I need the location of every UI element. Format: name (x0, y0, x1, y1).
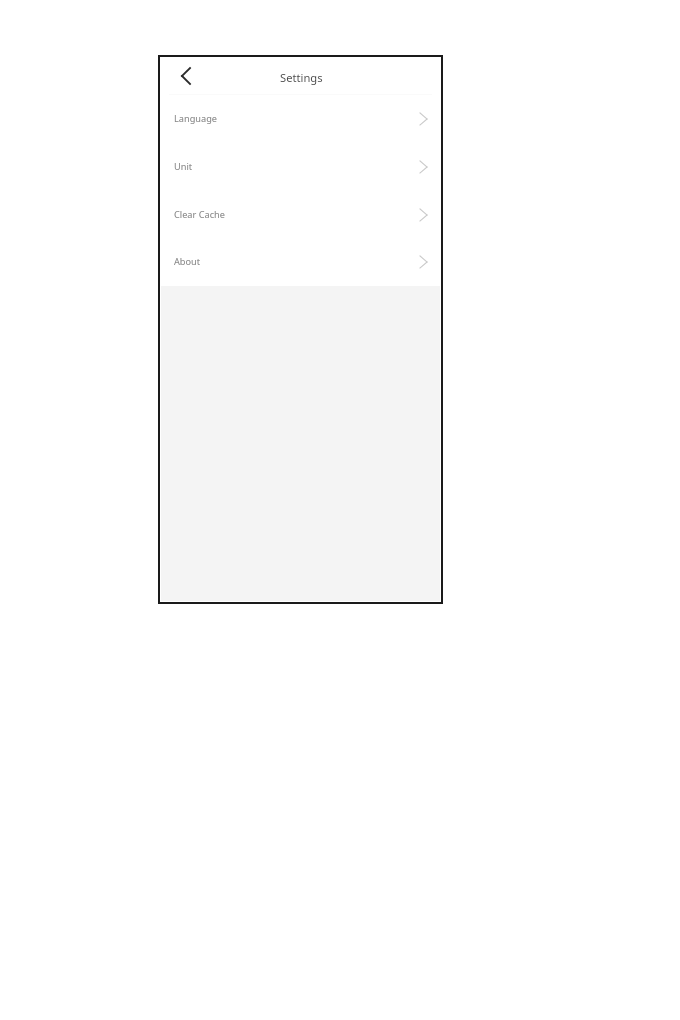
staticText: Unit (174, 160, 193, 173)
staticText: About (174, 255, 201, 268)
button[interactable]: Clear Cache (161, 192, 440, 240)
staticText: Clear Cache (174, 208, 225, 221)
button[interactable]: Back (169, 59, 203, 93)
button[interactable]: About (161, 240, 440, 286)
staticText: Settings (280, 70, 323, 85)
button[interactable]: Unit (161, 144, 440, 192)
button[interactable]: Language (161, 96, 440, 144)
staticText: Language (174, 112, 217, 125)
